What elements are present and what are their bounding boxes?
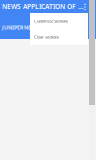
staticText: Clear sections [34,34,59,40]
staticText: JUNIPER NEWS [2,24,39,31]
button[interactable]: More options [80,1,90,13]
staticText: Customize Sections [34,18,68,24]
button[interactable]: Customize Sections [30,13,88,29]
staticText: NEWS APPLICATION OF … [2,2,84,11]
button[interactable]: Clear sections [30,29,88,45]
